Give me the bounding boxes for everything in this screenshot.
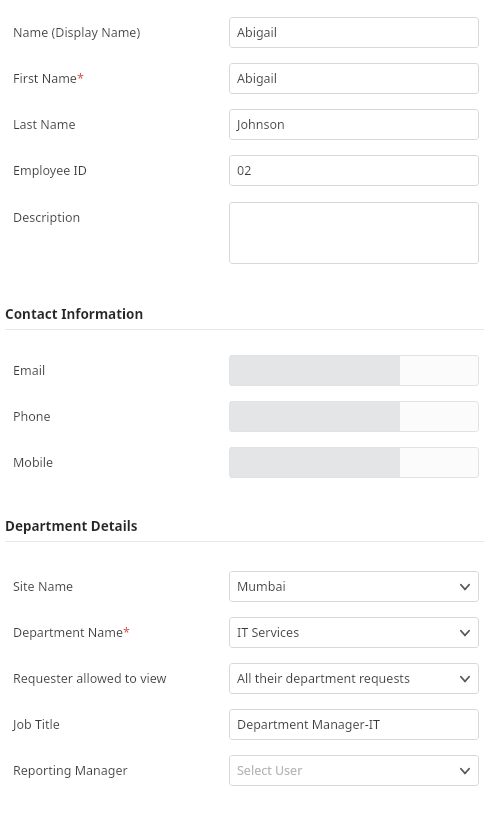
staticText: Site Name — [13, 578, 74, 595]
staticText: Description — [13, 209, 81, 226]
staticText: Johnson — [237, 116, 285, 133]
staticText: Name (Display Name) — [13, 24, 141, 41]
staticText: Abigail — [237, 24, 278, 41]
staticText: Phone — [13, 408, 51, 425]
button[interactable]: Reporting Manager — [229, 755, 479, 786]
button[interactable]: Phone — [229, 401, 479, 432]
staticText: First Name* — [13, 70, 84, 87]
button[interactable]: Mobile — [229, 447, 479, 478]
staticText: Abigail — [237, 70, 278, 87]
button[interactable]: Johnson — [229, 109, 479, 140]
staticText: Department Details — [5, 517, 138, 535]
staticText: Job Title — [13, 716, 60, 733]
staticText: Employee ID — [13, 162, 87, 179]
staticText: Mobile — [13, 454, 54, 471]
staticText: Mumbai — [237, 578, 286, 595]
button[interactable]: Requester allowed to view — [229, 663, 479, 694]
staticText: All their department requests — [237, 670, 410, 687]
staticText: Contact Information — [5, 305, 144, 323]
staticText: Department Manager-IT — [237, 716, 380, 733]
button[interactable]: Department Manager-IT — [229, 709, 479, 740]
button[interactable]: Department Name — [229, 617, 479, 648]
button[interactable] — [229, 202, 479, 264]
button[interactable]: Abigail — [229, 63, 479, 94]
staticText: 02 — [237, 162, 252, 179]
button[interactable]: 02 — [229, 155, 479, 186]
staticText: Requester allowed to view — [13, 670, 167, 687]
staticText: Department Name* — [13, 624, 130, 641]
staticText: Reporting Manager — [13, 762, 128, 779]
button[interactable]: Email — [229, 355, 479, 386]
staticText: Last Name — [13, 116, 76, 133]
staticText: IT Services — [237, 624, 300, 641]
button[interactable]: Site Name — [229, 571, 479, 602]
staticText: Email — [13, 362, 46, 379]
button[interactable]: Abigail — [229, 17, 479, 48]
staticText: Select User — [237, 762, 303, 779]
